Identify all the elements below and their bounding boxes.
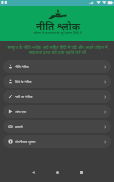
button[interactable]: Recent apps	[69, 162, 93, 182]
button[interactable]: Back	[21, 162, 45, 182]
button[interactable]: गोपनीयता सूचना	[3, 135, 111, 148]
button[interactable]: नीति श्लोक	[3, 60, 111, 73]
staticText: सम्पर्क	[15, 124, 23, 129]
staticText: नारी पर श्लोक	[15, 94, 33, 99]
staticText: संस्कृत के नीति श्लोक अर्थ सहित हिंदी मे…	[7, 44, 108, 55]
button[interactable]: नारी पर श्लोक	[3, 90, 111, 103]
staticText: नीति श्लोक	[36, 19, 80, 33]
button[interactable]: सम्पर्क	[3, 120, 111, 133]
button[interactable]: मित्र के श्लोक	[3, 75, 111, 88]
button[interactable]: Home	[45, 162, 69, 182]
button[interactable]: अन्य एप्प	[3, 105, 111, 118]
staticText: जीवन में सफलता के सूत्र सरल हिंदी में	[33, 30, 82, 35]
staticText: नीति श्लोक	[15, 64, 29, 69]
staticText: अन्य एप्प	[15, 109, 27, 114]
staticText: गोपनीयता सूचना	[15, 139, 36, 144]
staticText: मित्र के श्लोक	[15, 79, 32, 84]
